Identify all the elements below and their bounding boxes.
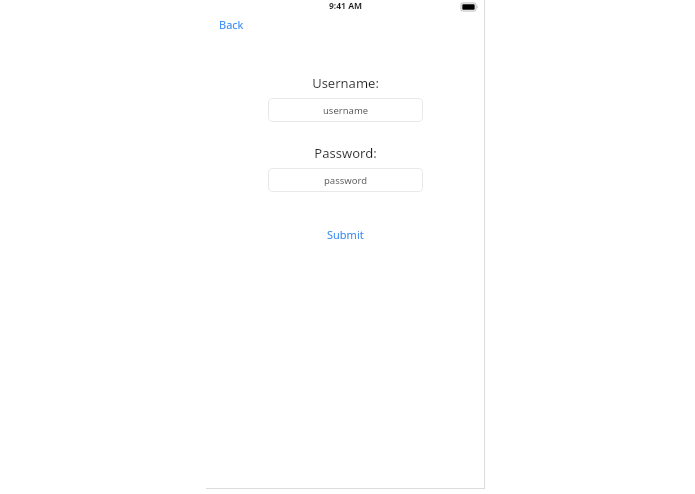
button[interactable]: Back xyxy=(218,16,245,33)
staticText: Password: xyxy=(314,144,377,162)
staticText: Username: xyxy=(312,74,379,92)
staticText: Submit xyxy=(327,227,364,242)
staticText: username xyxy=(323,104,369,117)
staticText: 9:41 AM xyxy=(329,0,363,12)
staticText: Back xyxy=(219,17,244,32)
button[interactable]: password xyxy=(268,168,423,192)
staticText: password xyxy=(324,174,368,187)
button[interactable]: Submit xyxy=(319,224,372,245)
button[interactable]: username xyxy=(268,98,423,122)
